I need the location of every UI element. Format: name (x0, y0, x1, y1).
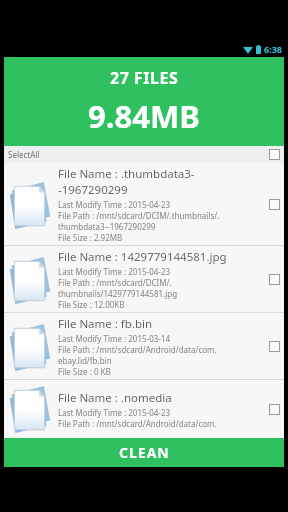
staticText: File Size : 0 KB (58, 366, 111, 377)
other: File (7, 321, 53, 373)
staticText: File Path : /mnt/sdcard/Android/data/com… (58, 344, 217, 355)
other: File (7, 179, 53, 231)
staticText: Last Modify Time : 2015-04-23 (58, 407, 171, 418)
button[interactable]: CLEAN (4, 438, 284, 467)
staticText: SelectAll (8, 149, 40, 160)
staticText: File Name : .thumbdata3- (58, 166, 195, 182)
button[interactable]: SelectAll (4, 146, 284, 163)
staticText: thumbdata3--1967290299 (58, 221, 156, 232)
button[interactable]: File (4, 163, 284, 245)
staticText: File Name : 1429779144581.jpg (58, 249, 227, 265)
staticText: File Size : 12.00KB (58, 299, 125, 310)
staticText: CLEAN (119, 443, 170, 462)
staticText: 6:38 (264, 43, 282, 55)
staticText: File Path : /mnt/sdcard/DCIM/.thumbnails… (58, 210, 220, 221)
staticText: File Path : /mnt/sdcard/DCIM/. (58, 277, 172, 288)
staticText: Last Modify Time : 2015-03-14 (58, 333, 171, 344)
staticText: File Size : 2.92MB (58, 232, 123, 243)
staticText: 9.84MB (88, 95, 200, 137)
staticText: Last Modify Time : 2015-04-23 (58, 266, 171, 277)
staticText: ebay.lid/fb.bin (58, 355, 112, 366)
staticText: 27 FILES (110, 67, 179, 89)
other: File (7, 254, 53, 306)
other: File (7, 383, 53, 435)
staticText: File Name : fb.bin (58, 316, 153, 332)
staticText: -1967290299 (58, 182, 128, 198)
button[interactable]: File (4, 313, 284, 379)
staticText: thumbnails/1429779144581.jpg (58, 288, 178, 299)
staticText: Last Modify Time : 2015-04-23 (58, 199, 171, 210)
button[interactable]: File (4, 246, 284, 312)
staticText: File Name : .nomedia (58, 390, 172, 406)
staticText: File Path : /mnt/sdcard/Android/data/com… (58, 418, 217, 429)
button[interactable]: File (4, 380, 284, 437)
